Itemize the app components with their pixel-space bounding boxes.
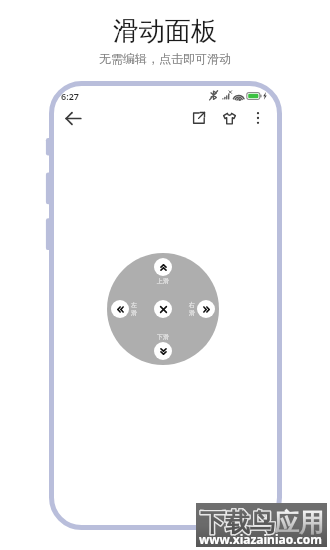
staticText: 滑	[189, 309, 195, 317]
staticText: 滑	[131, 309, 137, 317]
button[interactable]: Swipe right	[197, 300, 215, 318]
button[interactable]: More options	[244, 104, 272, 132]
staticText: 应用	[274, 507, 324, 538]
button[interactable]: Back	[59, 104, 87, 132]
staticText: 下载鸟	[200, 507, 275, 538]
staticText: 下滑	[157, 333, 169, 341]
staticText: 滑动面板	[113, 15, 217, 48]
staticText: 6:27	[61, 90, 79, 102]
staticText: 下载鸟	[200, 507, 275, 538]
button[interactable]: Theme	[215, 104, 243, 132]
staticText: 无需编辑，点击即可滑动	[99, 51, 231, 66]
button[interactable]: Swipe down	[154, 342, 172, 360]
button[interactable]: Close	[154, 300, 172, 318]
button[interactable]: Swipe up	[154, 258, 172, 276]
staticText: www.xiazainiao.com	[199, 531, 322, 547]
button[interactable]: Swipe left	[111, 300, 129, 318]
staticText: 上滑	[157, 277, 169, 285]
staticText: 右	[189, 301, 195, 309]
button[interactable]: Open in new window	[185, 104, 213, 132]
staticText: 左	[131, 301, 137, 309]
